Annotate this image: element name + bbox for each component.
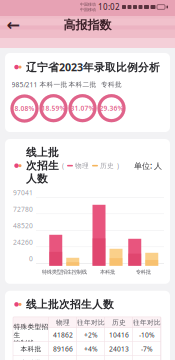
staticText: 本科批 xyxy=(20,345,41,353)
staticText: ( xyxy=(62,161,64,170)
staticText: 24013 xyxy=(109,344,129,353)
staticText: 985/211 xyxy=(11,80,37,89)
staticText: 物理 xyxy=(75,162,89,170)
staticText: 本科一批 xyxy=(39,80,67,89)
staticText: +4% xyxy=(84,344,98,353)
staticText: ← xyxy=(6,16,19,34)
staticText: 历史 xyxy=(100,162,114,170)
staticText: 专科批 xyxy=(20,359,41,360)
staticText: ) xyxy=(117,161,119,170)
staticText: 中国移动 xyxy=(80,2,96,7)
staticText: 特殊类型招生 控制线 xyxy=(13,323,48,347)
staticText: 18.59% xyxy=(41,104,65,113)
staticText: 单位: 人 xyxy=(134,160,162,171)
staticText: 线上批次招生人数 xyxy=(26,146,59,185)
staticText: 专科批 xyxy=(136,269,151,275)
staticText: 10416 xyxy=(109,330,129,339)
staticText: 专科批 xyxy=(101,80,122,89)
staticText: 24260 xyxy=(13,238,33,247)
staticText: 本科批 xyxy=(100,269,115,275)
staticText: 89166 xyxy=(53,344,73,353)
staticText: +2% xyxy=(84,330,98,339)
staticText: 0 xyxy=(29,254,33,263)
staticText: 历史 xyxy=(112,318,126,326)
staticText: 72780 xyxy=(13,205,33,214)
staticText: 高报指数 xyxy=(63,18,111,32)
staticText: 29.36% xyxy=(99,104,123,113)
staticText: -10% xyxy=(139,330,155,339)
staticText: 41862 xyxy=(53,330,73,339)
staticText: -7% xyxy=(141,344,153,353)
staticText: 本科二批 xyxy=(68,80,96,89)
staticText: 特殊类型招生控制线 xyxy=(42,269,87,275)
staticText: 48520 xyxy=(13,221,33,230)
staticText: 中国移动 xyxy=(80,7,96,12)
staticText: 辽宁省2023年录取比例分析 xyxy=(26,60,160,74)
staticText: 8.08% xyxy=(14,104,34,113)
staticText: 10:02 xyxy=(98,2,120,12)
staticText: 往年对比 xyxy=(77,318,105,326)
staticText: 往年对比 xyxy=(133,318,161,326)
staticText: 物理 xyxy=(56,318,70,326)
button[interactable]: 返回 xyxy=(0,14,26,36)
staticText: 97041 xyxy=(13,188,33,197)
staticText: 线上批次招生人数 xyxy=(26,298,114,311)
staticText: 31.07% xyxy=(70,104,94,113)
